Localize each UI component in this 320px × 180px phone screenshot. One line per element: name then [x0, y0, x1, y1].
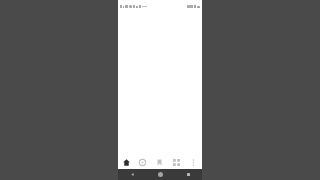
button[interactable]: Home — [146, 169, 174, 180]
button[interactable]: Home — [118, 155, 134, 169]
button[interactable]: Explore — [134, 155, 151, 169]
button[interactable]: Back — [118, 169, 146, 180]
button[interactable]: Recent apps — [174, 169, 202, 180]
button[interactable]: More — [185, 155, 202, 169]
button[interactable]: Saved — [151, 155, 168, 169]
button[interactable]: Library — [168, 155, 185, 169]
